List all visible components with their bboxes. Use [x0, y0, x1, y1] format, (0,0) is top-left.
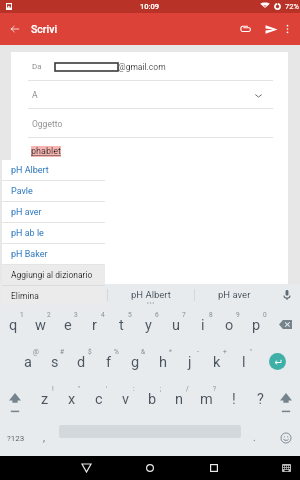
button[interactable]: pH ab le	[2, 223, 105, 243]
button[interactable]: @	[14, 344, 41, 381]
button[interactable]: 9	[216, 307, 243, 344]
button[interactable]: %	[95, 344, 122, 381]
button[interactable]: &	[122, 344, 149, 381]
staticText: pH Baker	[11, 249, 48, 260]
button[interactable]: 4	[81, 307, 108, 344]
staticText: !	[52, 385, 54, 393]
button[interactable]: Caps lock	[273, 385, 299, 421]
staticText: h	[159, 354, 167, 371]
staticText: i	[201, 317, 205, 334]
button[interactable]: !	[220, 381, 247, 418]
button[interactable]: ?	[247, 381, 274, 418]
button[interactable]: Pavle	[2, 181, 105, 201]
staticText: l	[242, 354, 246, 371]
button[interactable]: Send	[259, 13, 284, 45]
staticText: Scrivi	[31, 23, 58, 35]
staticText: o	[225, 317, 234, 334]
button[interactable]: pH aver	[194, 284, 274, 306]
button[interactable]: Switch keyboard	[274, 456, 298, 480]
staticText: Pavle	[11, 186, 33, 197]
button[interactable]: Voice input	[274, 284, 299, 306]
staticText: w	[35, 317, 46, 334]
button[interactable]: 7	[162, 307, 189, 344]
button[interactable]: #	[41, 344, 68, 381]
staticText: A	[32, 90, 38, 100]
button[interactable]: :	[112, 381, 139, 418]
staticText: d	[77, 354, 86, 371]
button[interactable]: Back	[68, 456, 104, 480]
staticText: /	[186, 385, 189, 393]
button[interactable]: pH Albert	[107, 284, 194, 306]
button[interactable]: Enter	[269, 353, 286, 370]
button[interactable]: 3	[54, 307, 81, 344]
button[interactable]: "	[230, 344, 257, 381]
staticText: ?123	[7, 434, 25, 443]
staticText: c	[95, 391, 103, 408]
button[interactable]: ?123	[1, 418, 31, 458]
staticText: ?	[213, 385, 217, 393]
button[interactable]: Backspace	[272, 306, 298, 342]
staticText: 4	[101, 311, 105, 319]
staticText: a	[24, 354, 32, 371]
button[interactable]: pH aver	[2, 202, 105, 222]
staticText: ?	[257, 391, 264, 408]
staticText: #	[60, 348, 65, 356]
staticText: 10:09	[140, 2, 160, 11]
staticText: Aggiungi al dizionario	[11, 270, 93, 280]
button[interactable]: 0	[243, 307, 270, 344]
staticText: q	[9, 317, 18, 334]
button[interactable]	[20, 284, 107, 306]
button[interactable]: 5	[108, 307, 135, 344]
button[interactable]: Aggiungi al dizionario	[2, 265, 105, 285]
button[interactable]: Shift	[2, 385, 28, 421]
button[interactable]: ,	[31, 418, 56, 458]
button[interactable]: 8	[189, 307, 216, 344]
staticText: 5	[128, 311, 132, 319]
button[interactable]: 6	[135, 307, 162, 344]
button[interactable]: Emoji	[274, 418, 298, 458]
button[interactable]: Attach file	[232, 13, 259, 45]
button[interactable]: Recent apps	[196, 456, 232, 480]
staticText: *	[169, 348, 172, 356]
staticText: pH Albert	[11, 165, 49, 176]
button[interactable]: +	[203, 344, 230, 381]
staticText: 7	[182, 311, 186, 319]
button[interactable]: -	[176, 344, 203, 381]
staticText: $	[88, 348, 92, 356]
button[interactable]: '	[85, 381, 112, 418]
button[interactable]: More options	[278, 13, 297, 45]
button[interactable]: Home	[132, 456, 168, 480]
button[interactable]: 2	[27, 307, 54, 344]
button[interactable]: $	[68, 344, 95, 381]
button[interactable]: Space	[59, 413, 241, 439]
staticText: ;	[160, 385, 162, 393]
button[interactable]: !	[31, 381, 58, 418]
staticText: 9	[236, 311, 240, 319]
staticText: pH ab le	[11, 228, 44, 239]
button[interactable]: 1	[0, 307, 27, 344]
button[interactable]: /	[166, 381, 193, 418]
button[interactable]: Elimina	[2, 286, 105, 305]
staticText: pH aver	[11, 207, 42, 218]
button[interactable]: pH Albert	[2, 160, 105, 180]
staticText: -	[197, 348, 199, 356]
staticText: j	[188, 354, 192, 371]
staticText: :	[133, 385, 135, 393]
staticText: r	[92, 317, 97, 334]
staticText: phablet	[31, 146, 61, 157]
staticText: g	[131, 354, 140, 371]
button[interactable]: .	[243, 418, 265, 458]
staticText: ,	[43, 432, 45, 444]
staticText: @gmail.com	[118, 62, 166, 72]
staticText: +	[223, 348, 227, 356]
button[interactable]: ;	[139, 381, 166, 418]
button[interactable]: Back	[0, 13, 29, 45]
button[interactable]: "	[58, 381, 85, 418]
staticText: y	[145, 317, 152, 334]
staticText: &	[141, 348, 146, 356]
staticText: 72%	[285, 2, 299, 11]
button[interactable]: pH Baker	[2, 244, 105, 264]
staticText: 8	[209, 311, 213, 319]
button[interactable]: *	[149, 344, 176, 381]
button[interactable]: ?	[193, 381, 220, 418]
